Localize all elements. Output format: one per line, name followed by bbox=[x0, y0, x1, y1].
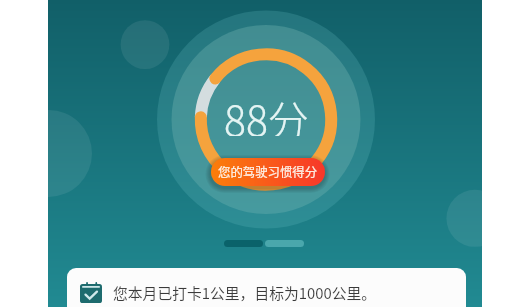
staticText: 88分 bbox=[224, 88, 309, 136]
button[interactable]: 您本月已打卡1公里，目标为1000公里。 bbox=[67, 268, 466, 307]
staticText: 您本月已打卡1公里，目标为1000公里。 bbox=[113, 282, 377, 303]
button[interactable]: 您的驾驶习惯得分 bbox=[211, 158, 325, 186]
button[interactable]: Page 2 bbox=[265, 240, 304, 247]
button[interactable]: Page 1 bbox=[224, 240, 263, 247]
staticText: 您的驾驶习惯得分 bbox=[218, 163, 318, 181]
